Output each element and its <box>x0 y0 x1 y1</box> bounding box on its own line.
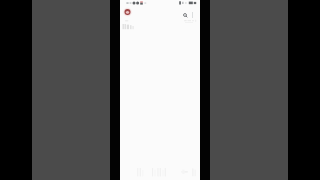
button[interactable]: Search <box>181 11 190 20</box>
button[interactable]: Account <box>123 8 132 17</box>
button[interactable]: More options <box>188 10 197 19</box>
